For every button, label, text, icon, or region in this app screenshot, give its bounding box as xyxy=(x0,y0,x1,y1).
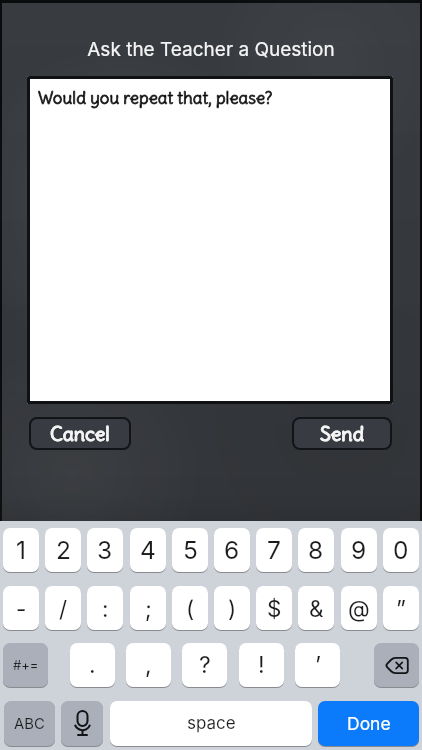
staticText: ) xyxy=(228,595,237,622)
button[interactable]: @ xyxy=(341,586,377,630)
button[interactable]: - xyxy=(3,586,39,630)
button[interactable]: 1 xyxy=(3,528,39,572)
staticText: ? xyxy=(199,651,211,679)
button[interactable]: ( xyxy=(172,586,208,630)
button[interactable]: 0 xyxy=(383,528,419,572)
button[interactable] xyxy=(61,701,103,746)
button[interactable]: $ xyxy=(256,586,292,630)
button[interactable]: 5 xyxy=(172,528,208,572)
staticText: ; xyxy=(145,595,152,622)
staticText: Send xyxy=(320,422,365,446)
staticText: 0 xyxy=(393,535,409,565)
staticText: Would you repeat that, please? xyxy=(38,87,273,108)
staticText: Cancel xyxy=(50,422,110,446)
button[interactable]: ’ xyxy=(295,643,340,687)
staticText: : xyxy=(102,595,109,622)
staticText: ABC xyxy=(14,715,45,733)
staticText: 9 xyxy=(351,535,367,565)
button[interactable]: 4 xyxy=(130,528,166,572)
button[interactable]: #+= xyxy=(3,643,48,687)
button[interactable]: Done xyxy=(318,701,419,746)
button[interactable]: Send xyxy=(292,417,392,450)
button[interactable]: : xyxy=(87,586,123,630)
button[interactable]: 2 xyxy=(45,528,81,572)
button[interactable]: ! xyxy=(239,643,284,687)
staticText: - xyxy=(16,595,27,622)
button[interactable]: ; xyxy=(130,586,166,630)
staticText: #+= xyxy=(13,657,39,673)
staticText: 7 xyxy=(267,535,281,565)
staticText: ( xyxy=(186,595,195,622)
staticText: & xyxy=(309,595,324,622)
button[interactable]: & xyxy=(298,586,334,630)
button[interactable]: 3 xyxy=(87,528,123,572)
staticText: ’ xyxy=(315,651,321,679)
button[interactable]: ) xyxy=(214,586,250,630)
staticText: Ask the Teacher a Question xyxy=(0,38,422,61)
button[interactable]: ” xyxy=(383,586,419,630)
staticText: 1 xyxy=(16,535,26,565)
staticText: $ xyxy=(267,595,282,622)
staticText: Send xyxy=(320,422,365,446)
staticText: , xyxy=(145,651,152,679)
staticText: 4 xyxy=(140,535,156,565)
button[interactable]: 9 xyxy=(341,528,377,572)
button[interactable]: space xyxy=(110,701,312,746)
staticText: @ xyxy=(348,595,370,622)
staticText: Would you repeat that, please? xyxy=(38,87,273,108)
staticText: 8 xyxy=(308,535,324,565)
staticText: / xyxy=(59,595,68,622)
staticText: 5 xyxy=(183,535,198,565)
button[interactable]: / xyxy=(45,586,81,630)
button[interactable] xyxy=(374,643,419,687)
staticText: . xyxy=(89,651,96,679)
staticText: 3 xyxy=(97,535,113,565)
staticText: ” xyxy=(396,595,406,622)
staticText: 6 xyxy=(224,535,240,565)
button[interactable]: . xyxy=(70,643,115,687)
button[interactable]: 8 xyxy=(298,528,334,572)
staticText: space xyxy=(187,713,236,734)
staticText: ! xyxy=(258,651,265,679)
button[interactable]: Would you repeat that, please? xyxy=(27,76,393,404)
button[interactable]: , xyxy=(126,643,171,687)
button[interactable]: Cancel xyxy=(29,417,131,450)
staticText: Cancel xyxy=(50,422,110,446)
button[interactable]: 6 xyxy=(214,528,250,572)
button[interactable]: 7 xyxy=(256,528,292,572)
button[interactable]: ? xyxy=(182,643,227,687)
staticText: Done xyxy=(347,713,391,734)
button[interactable]: ABC xyxy=(4,701,55,746)
staticText: 2 xyxy=(56,535,71,565)
